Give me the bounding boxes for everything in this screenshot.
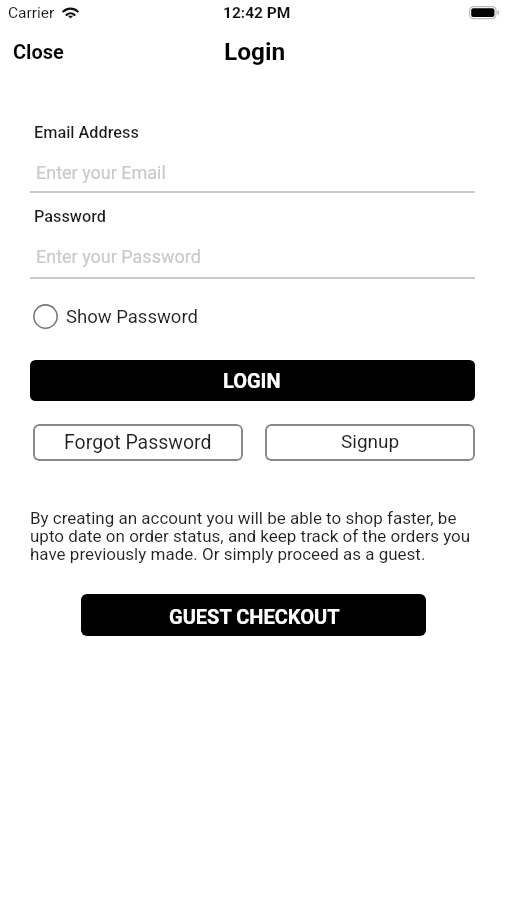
staticText: Email Address <box>34 123 139 142</box>
other: Battery full <box>469 6 501 20</box>
button[interactable]: Close <box>4 36 72 66</box>
staticText: Show Password <box>66 306 198 328</box>
button[interactable]: Forgot Password <box>33 424 243 461</box>
button[interactable]: GUEST CHECKOUT <box>81 594 426 636</box>
staticText: Enter your Email <box>36 162 166 183</box>
staticText: Forgot Password <box>64 431 212 454</box>
staticText: Close <box>13 40 64 63</box>
staticText: GUEST CHECKOUT <box>169 605 340 628</box>
staticText: Signup <box>341 430 400 452</box>
staticText: Carrier <box>8 4 55 22</box>
button[interactable]: Show Password <box>30 300 230 333</box>
staticText: Login <box>224 37 286 66</box>
button[interactable]: Signup <box>265 424 475 461</box>
other: Wi-Fi <box>58 4 83 22</box>
staticText: By creating an account you will be able … <box>30 508 476 564</box>
staticText: LOGIN <box>223 369 281 392</box>
button[interactable]: LOGIN <box>30 360 475 401</box>
staticText: 12:42 PM <box>223 4 291 22</box>
staticText: Password <box>34 207 107 226</box>
staticText: Enter your Password <box>36 246 201 267</box>
